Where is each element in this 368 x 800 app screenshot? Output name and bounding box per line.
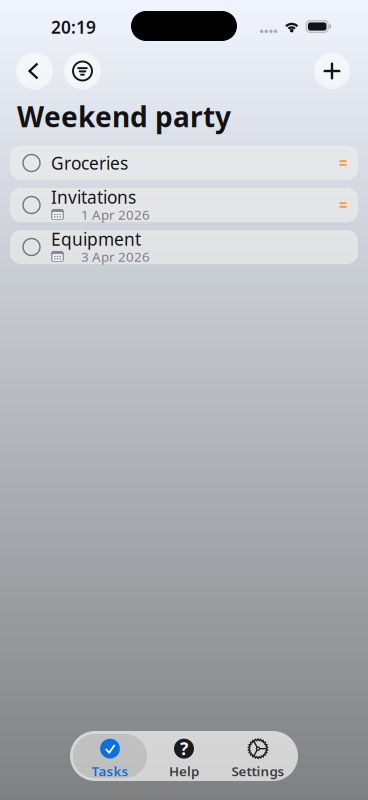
button[interactable]: Filter and sort bbox=[64, 52, 101, 89]
button[interactable]: Groceries bbox=[10, 146, 358, 180]
staticText: Groceries bbox=[51, 151, 128, 174]
staticText: 3 Apr 2026 bbox=[81, 248, 150, 265]
staticText: Settings bbox=[231, 762, 284, 780]
staticText: ? bbox=[180, 737, 188, 760]
staticText: Weekend party bbox=[17, 98, 231, 135]
button[interactable]: Add task bbox=[314, 53, 350, 89]
button[interactable]: Tasks bbox=[73, 734, 147, 778]
staticText: 20:19 bbox=[51, 15, 96, 38]
button[interactable]: Back bbox=[16, 52, 53, 89]
staticText: Tasks bbox=[91, 762, 128, 780]
staticText: Help bbox=[169, 762, 199, 780]
button[interactable]: Equipment bbox=[10, 230, 358, 264]
button[interactable]: ? bbox=[147, 734, 221, 778]
staticText: Equipment bbox=[51, 227, 141, 250]
staticText: 1 Apr 2026 bbox=[81, 206, 150, 223]
button[interactable]: Settings bbox=[221, 734, 295, 778]
staticText: Invitations bbox=[51, 185, 136, 208]
button[interactable]: Invitations bbox=[10, 188, 358, 222]
